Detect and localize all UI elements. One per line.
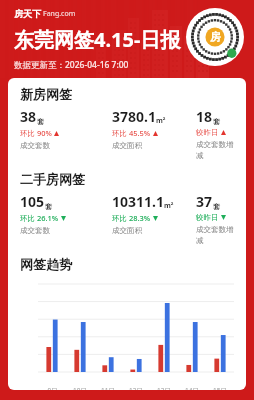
- staticText: 12日: [129, 386, 143, 390]
- staticText: 成交套数: [20, 226, 50, 235]
- staticText: 房: [210, 30, 221, 44]
- button[interactable]: 3780.1: [112, 107, 196, 150]
- staticText: 成交面积: [112, 141, 142, 150]
- staticText: 10日: [73, 386, 87, 390]
- staticText: m²: [156, 116, 166, 126]
- staticText: 套: [213, 202, 220, 211]
- button[interactable]: 18: [196, 107, 240, 160]
- staticText: 9日: [47, 386, 58, 390]
- staticText: 较昨日: [196, 128, 219, 137]
- staticText: 13日: [157, 386, 171, 390]
- staticText: 18: [196, 107, 213, 126]
- staticText: 成交套数增减: [196, 225, 240, 245]
- staticText: 环比 28.3%: [112, 213, 151, 223]
- staticText: 105: [20, 192, 45, 211]
- staticText: 37: [196, 192, 213, 211]
- staticText: 环比 45.5%: [112, 128, 151, 138]
- staticText: 套: [213, 117, 220, 126]
- staticText: 环比 90%: [20, 128, 52, 138]
- staticText: Fang.com: [43, 9, 76, 19]
- staticText: 套: [37, 117, 44, 126]
- button[interactable]: 二手房网签: [20, 171, 246, 187]
- staticText: 成交套数: [20, 141, 50, 150]
- staticText: m²: [164, 201, 174, 211]
- button[interactable]: 105: [20, 192, 112, 235]
- staticText: 二手房网签: [20, 171, 85, 187]
- staticText: 环比 26.1%: [20, 213, 59, 223]
- staticText: 房天下: [14, 8, 41, 19]
- staticText: 38: [20, 107, 37, 126]
- staticText: 较昨日: [196, 213, 219, 222]
- button[interactable]: 新房网签: [20, 86, 246, 102]
- staticText: 新房网签: [20, 86, 72, 102]
- staticText: 数据更新至：2026-04-16 7:00: [14, 59, 129, 71]
- button[interactable]: 37: [196, 192, 240, 245]
- staticText: 11日: [101, 386, 115, 390]
- button[interactable]: 房天下 标识: [186, 8, 244, 66]
- button[interactable]: 38: [20, 107, 112, 150]
- button[interactable]: 网签趋势: [20, 256, 246, 272]
- staticText: 15日: [213, 386, 227, 390]
- button[interactable]: 10311.1: [112, 192, 196, 235]
- staticText: 东莞网签4.15-日报: [14, 26, 181, 53]
- staticText: 10311.1: [112, 192, 164, 211]
- staticText: 3780.1: [112, 107, 156, 126]
- staticText: 套: [45, 202, 52, 211]
- staticText: 成交套数增减: [196, 140, 240, 160]
- staticText: 网签趋势: [20, 256, 72, 272]
- staticText: 成交面积: [112, 226, 142, 235]
- staticText: 14日: [185, 386, 199, 390]
